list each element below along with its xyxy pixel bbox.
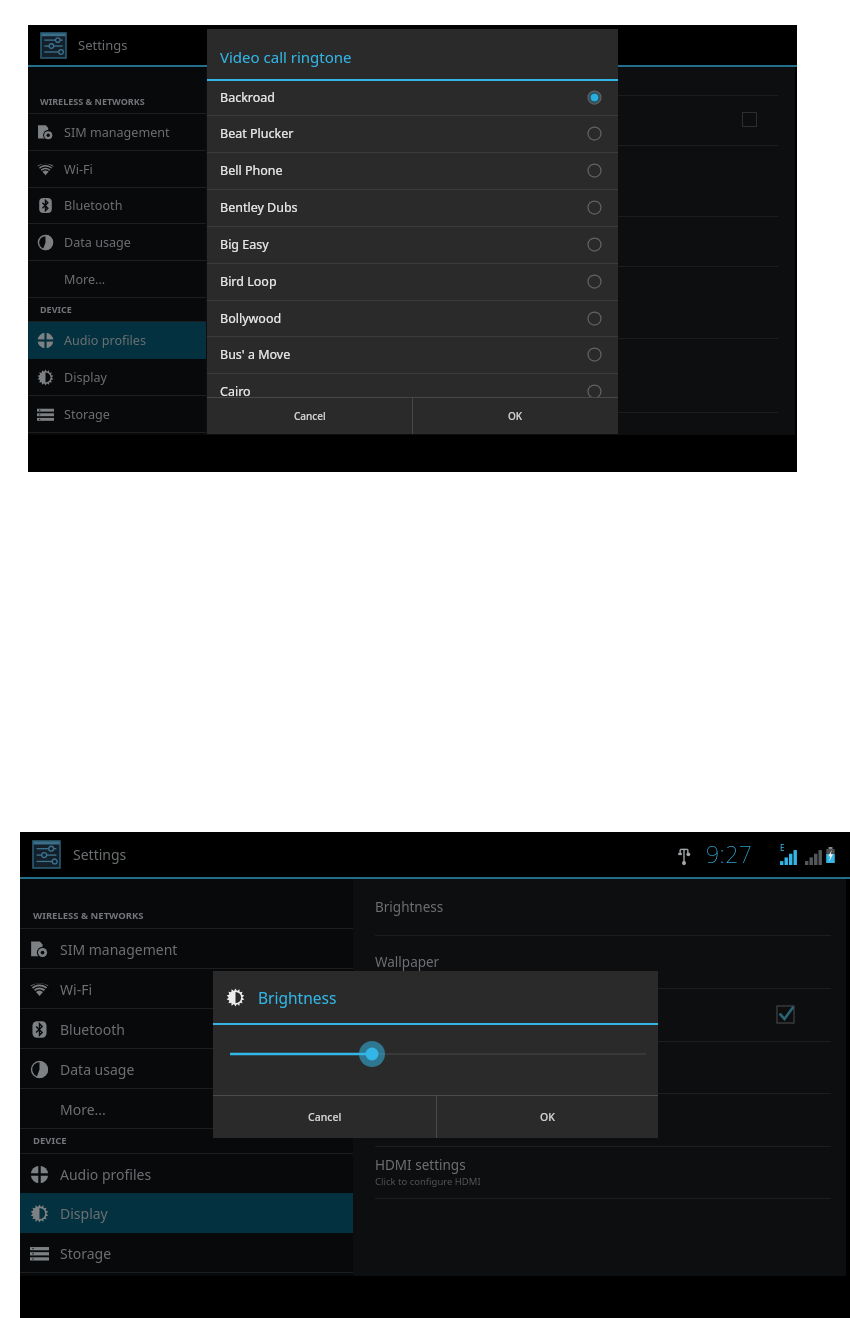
button[interactable]: Daydream	[353, 1093, 846, 1146]
staticText: Settings	[78, 36, 128, 54]
staticText: Bus' a Move	[220, 346, 291, 363]
staticText: Daydream	[375, 1104, 441, 1122]
button[interactable]: Bus' a Move	[207, 336, 618, 373]
staticText: Bluetooth	[64, 197, 123, 214]
button[interactable]: Audio profiles	[28, 322, 206, 359]
staticText: Display	[60, 1204, 108, 1223]
button[interactable]: Big Easy	[207, 226, 618, 263]
staticText: Bollywood	[220, 310, 282, 327]
button[interactable]: Bluetooth	[20, 1009, 353, 1049]
other: Settings	[32, 840, 61, 869]
button[interactable]: Cairo	[207, 373, 618, 410]
staticText: 9:27	[706, 838, 753, 869]
button[interactable]: Data usage	[20, 1049, 353, 1089]
staticText: Video call ringtone	[220, 47, 352, 67]
button[interactable]: Sleep	[353, 1041, 846, 1093]
staticText: Data usage	[64, 234, 131, 251]
staticText: Display	[64, 369, 107, 386]
staticText: Backroad	[220, 89, 275, 106]
button[interactable]: Bentley Dubs	[207, 189, 618, 226]
staticText: Bird Loop	[220, 273, 277, 290]
button[interactable]: More...	[20, 1089, 353, 1129]
staticText: Cancel	[308, 1110, 342, 1124]
staticText: OK	[540, 1110, 555, 1124]
button[interactable]: Storage	[20, 1233, 353, 1273]
button[interactable]: Settings	[20, 832, 180, 877]
staticText: More...	[60, 1100, 106, 1119]
staticText: Click to configure HDMI	[375, 1175, 481, 1188]
button[interactable]: Cancel	[207, 397, 412, 434]
button[interactable]: Brightness	[353, 879, 846, 935]
staticText: E	[780, 842, 785, 853]
staticText: DEVICE	[33, 1134, 67, 1147]
staticText: Auto-rotate screen	[375, 1006, 494, 1024]
staticText: HDMI settings	[375, 1156, 466, 1174]
staticText: Audio profiles	[60, 1165, 152, 1184]
staticText: Wi-Fi	[64, 161, 93, 178]
staticText: More...	[64, 271, 106, 288]
staticText: SIM management	[64, 124, 170, 141]
button[interactable]: Beat Plucker	[207, 115, 618, 152]
button[interactable]: More...	[28, 261, 206, 298]
button[interactable]: Auto-rotate screen	[353, 988, 846, 1041]
button[interactable]: Display	[28, 359, 206, 396]
staticText: Wallpaper	[375, 953, 440, 971]
staticText: WIRELESS & NETWORKS	[33, 909, 144, 922]
button[interactable]: Wi-Fi	[20, 969, 353, 1009]
button[interactable]: Status bar: USB connected, 9:27, signal,…	[674, 838, 838, 872]
staticText: Bentley Dubs	[220, 199, 298, 216]
button[interactable]: SIM management	[28, 114, 206, 151]
button[interactable]: Display	[20, 1193, 353, 1233]
button[interactable]: Settings	[28, 25, 178, 65]
staticText: Data usage	[60, 1060, 135, 1079]
staticText: Beat Plucker	[220, 125, 294, 142]
button[interactable]: Wallpaper	[353, 935, 846, 988]
staticText: Bell Phone	[220, 162, 283, 179]
button[interactable]: Bluetooth	[28, 187, 206, 224]
staticText: WIRELESS & NETWORKS	[40, 95, 145, 107]
button[interactable]: Data usage	[28, 224, 206, 261]
staticText: Storage	[64, 406, 110, 423]
staticText: DEVICE	[40, 303, 72, 315]
staticText: Bluetooth	[60, 1020, 125, 1039]
button[interactable]: Bollywood	[207, 300, 618, 337]
staticText: Storage	[60, 1244, 112, 1263]
staticText: Brightness	[258, 987, 337, 1008]
staticText: Cairo	[220, 383, 251, 400]
staticText: Brightness	[375, 898, 444, 916]
button[interactable]: Bird Loop	[207, 263, 618, 300]
button[interactable]: Cancel	[213, 1095, 436, 1138]
button[interactable]: SIM management	[20, 929, 353, 969]
button[interactable]: HDMI settings	[353, 1146, 846, 1198]
button[interactable]: OK	[437, 1095, 658, 1138]
staticText: SIM management	[60, 940, 178, 959]
staticText: Big Easy	[220, 236, 269, 253]
button[interactable]: Backroad	[207, 79, 618, 116]
staticText: Sleep	[375, 1051, 410, 1069]
button[interactable]: Storage	[28, 396, 206, 433]
button[interactable]: Audio profiles	[20, 1154, 353, 1194]
other: Settings	[40, 32, 67, 59]
button[interactable]: Wi-Fi	[28, 151, 206, 188]
staticText: Audio profiles	[64, 332, 146, 349]
button[interactable]: Bell Phone	[207, 152, 618, 189]
staticText: Cancel	[294, 409, 326, 423]
staticText: Settings	[73, 845, 127, 864]
staticText: OK	[508, 409, 523, 423]
staticText: Wi-Fi	[60, 980, 93, 999]
button[interactable]: OK	[413, 397, 618, 434]
